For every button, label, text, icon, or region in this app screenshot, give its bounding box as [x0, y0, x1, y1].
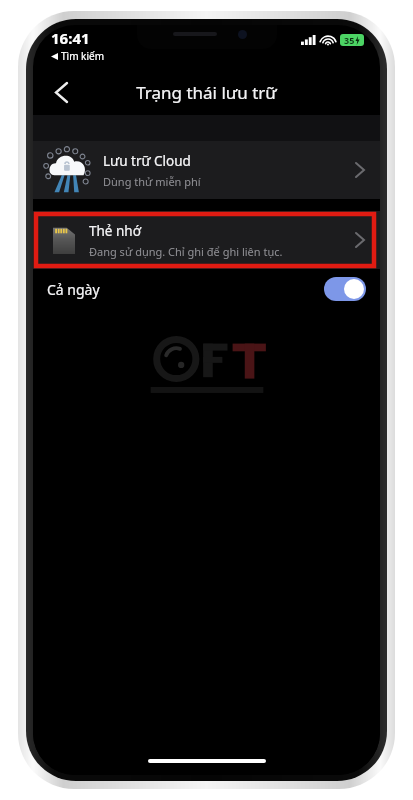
button[interactable]: Cả ngày: [33, 269, 380, 309]
staticText: 16:41: [51, 28, 90, 48]
staticText: Trạng thái lưu trữ: [136, 81, 277, 104]
staticText: Dùng thử miễn phí: [103, 174, 201, 189]
staticText: Tìm kiếm: [61, 49, 104, 63]
staticText: 35: [344, 34, 355, 46]
staticText: Thẻ nhớ: [89, 222, 141, 240]
button[interactable]: Back: [39, 70, 83, 114]
button[interactable]: Thẻ nhớ: [33, 211, 380, 269]
button[interactable]: Lưu trữ Cloud: [33, 141, 380, 199]
staticText: Cả ngày: [47, 280, 324, 299]
staticText: Đang sử dụng. Chỉ ghi để ghi liên tục.: [89, 244, 283, 259]
staticText: Lưu trữ Cloud: [103, 152, 191, 170]
